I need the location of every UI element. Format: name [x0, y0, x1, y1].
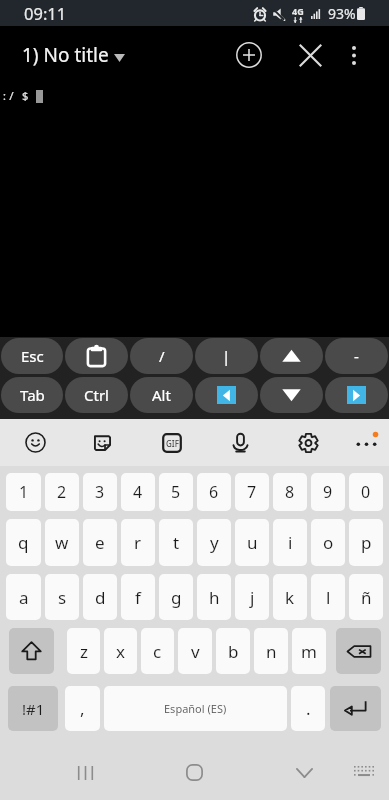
staticText: x	[116, 640, 125, 663]
button[interactable]: New session	[225, 30, 273, 80]
button[interactable]: Recent apps	[58, 745, 112, 800]
button[interactable]: r	[121, 519, 155, 566]
staticText: ñ	[361, 586, 372, 609]
button[interactable]: w	[45, 519, 79, 566]
button[interactable]: x	[104, 628, 137, 674]
button[interactable]: f	[121, 574, 155, 620]
staticText: n	[266, 640, 277, 663]
button[interactable]: b	[216, 628, 250, 674]
staticText: Alt	[152, 385, 171, 405]
button[interactable]: -	[325, 338, 388, 374]
button[interactable]: Español (ES)	[104, 686, 287, 731]
staticText: a	[19, 586, 29, 609]
button[interactable]: Alt	[130, 377, 193, 413]
button[interactable]: e	[83, 519, 117, 566]
button[interactable]: s	[45, 574, 79, 620]
button[interactable]: 4	[121, 473, 155, 511]
button[interactable]: i	[273, 519, 307, 566]
button[interactable]: n	[254, 628, 288, 674]
staticText: :/ $	[1, 88, 36, 104]
button[interactable]: Down	[260, 377, 323, 413]
staticText: l	[326, 586, 331, 609]
button[interactable]: 9	[311, 473, 345, 511]
staticText: GIF	[166, 438, 179, 449]
button[interactable]: Close	[288, 30, 332, 80]
button[interactable]: More	[343, 419, 389, 466]
staticText: u	[247, 531, 258, 554]
button[interactable]: Tab	[1, 377, 63, 413]
button[interactable]: ñ	[349, 574, 383, 620]
button[interactable]: q	[6, 519, 41, 566]
staticText: ,	[80, 697, 85, 720]
button[interactable]: y	[197, 519, 231, 566]
staticText: j	[250, 586, 255, 609]
staticText: Ctrl	[84, 385, 109, 405]
button[interactable]: GIF	[149, 419, 195, 466]
button[interactable]: l	[311, 574, 345, 620]
staticText: 4G	[292, 5, 304, 17]
button[interactable]: g	[159, 574, 193, 620]
button[interactable]: 8	[273, 473, 307, 511]
button[interactable]: Hide keyboard	[337, 745, 389, 800]
staticText: 2	[57, 481, 67, 503]
button[interactable]: 5	[159, 473, 193, 511]
button[interactable]: 0	[349, 473, 383, 511]
button[interactable]: Up	[260, 338, 323, 374]
button[interactable]: More options	[332, 30, 376, 80]
button[interactable]: 6	[197, 473, 231, 511]
button[interactable]: Voice input	[217, 419, 263, 466]
button[interactable]: 1	[6, 473, 41, 511]
button[interactable]: 2	[45, 473, 79, 511]
staticText: m	[301, 640, 317, 663]
staticText: h	[209, 586, 220, 609]
staticText: 9	[323, 481, 333, 503]
button[interactable]: Back	[277, 745, 331, 800]
button[interactable]: v	[178, 628, 212, 674]
staticText: c	[153, 640, 162, 663]
button[interactable]: Shift	[9, 628, 54, 674]
button[interactable]: k	[273, 574, 307, 620]
button[interactable]: 7	[235, 473, 269, 511]
button[interactable]: .	[291, 686, 325, 731]
button[interactable]: ,	[65, 686, 100, 731]
button[interactable]: j	[235, 574, 269, 620]
button[interactable]: z	[67, 628, 100, 674]
button[interactable]: Home	[167, 745, 221, 800]
button[interactable]: |	[195, 338, 258, 374]
button[interactable]: Esc	[1, 338, 63, 374]
button[interactable]: d	[83, 574, 117, 620]
staticText: Español (ES)	[164, 701, 227, 716]
staticText: 1) No title	[22, 42, 109, 68]
button[interactable]: /	[130, 338, 193, 374]
button[interactable]: a	[6, 574, 41, 620]
button[interactable]: Stickers	[79, 419, 125, 466]
staticText: !#1	[22, 699, 45, 719]
button[interactable]: t	[159, 519, 193, 566]
staticText: Tab	[20, 385, 45, 405]
staticText: 6	[209, 481, 219, 503]
button[interactable]: Backspace	[336, 628, 381, 674]
button[interactable]: Paste	[65, 338, 128, 374]
button[interactable]: c	[141, 628, 174, 674]
button[interactable]: Left	[195, 377, 258, 413]
staticText: d	[95, 586, 106, 609]
button[interactable]: o	[311, 519, 345, 566]
button[interactable]: 3	[83, 473, 117, 511]
button[interactable]: Right	[325, 377, 388, 413]
button[interactable]: u	[235, 519, 269, 566]
button[interactable]: h	[197, 574, 231, 620]
button[interactable]: m	[292, 628, 326, 674]
button[interactable]: Settings	[285, 419, 331, 466]
button[interactable]: Enter	[330, 686, 381, 731]
staticText: -	[354, 346, 359, 366]
staticText: Esc	[21, 346, 44, 366]
button[interactable]: 1) No title	[0, 42, 135, 68]
button[interactable]: Ctrl	[65, 377, 128, 413]
button[interactable]: Emoji	[12, 419, 58, 466]
button[interactable]: p	[349, 519, 383, 566]
staticText: y	[210, 531, 219, 554]
staticText: b	[228, 640, 239, 663]
staticText: |	[222, 346, 231, 366]
staticText: /	[159, 346, 165, 366]
button[interactable]: !#1	[8, 686, 58, 731]
